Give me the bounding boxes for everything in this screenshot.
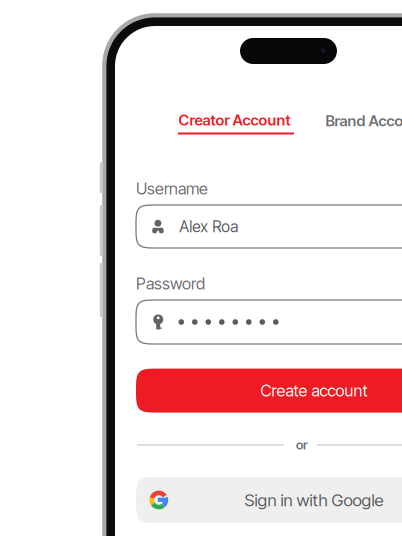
button[interactable]: Brand Account: [325, 112, 402, 130]
staticText: Create account: [260, 381, 367, 400]
staticText: Username: [136, 179, 208, 198]
staticText: Creator Account: [178, 111, 290, 129]
staticText: Sign in with Google: [244, 490, 383, 510]
button[interactable]: Sign in with Google: [136, 477, 402, 523]
staticText: or: [296, 437, 308, 452]
staticText: Alex Roa: [179, 217, 238, 236]
staticText: Password: [136, 274, 205, 293]
button[interactable]: Creator Account: [178, 111, 294, 141]
staticText: Brand Account: [325, 112, 402, 130]
button[interactable]: Create account: [136, 369, 402, 413]
